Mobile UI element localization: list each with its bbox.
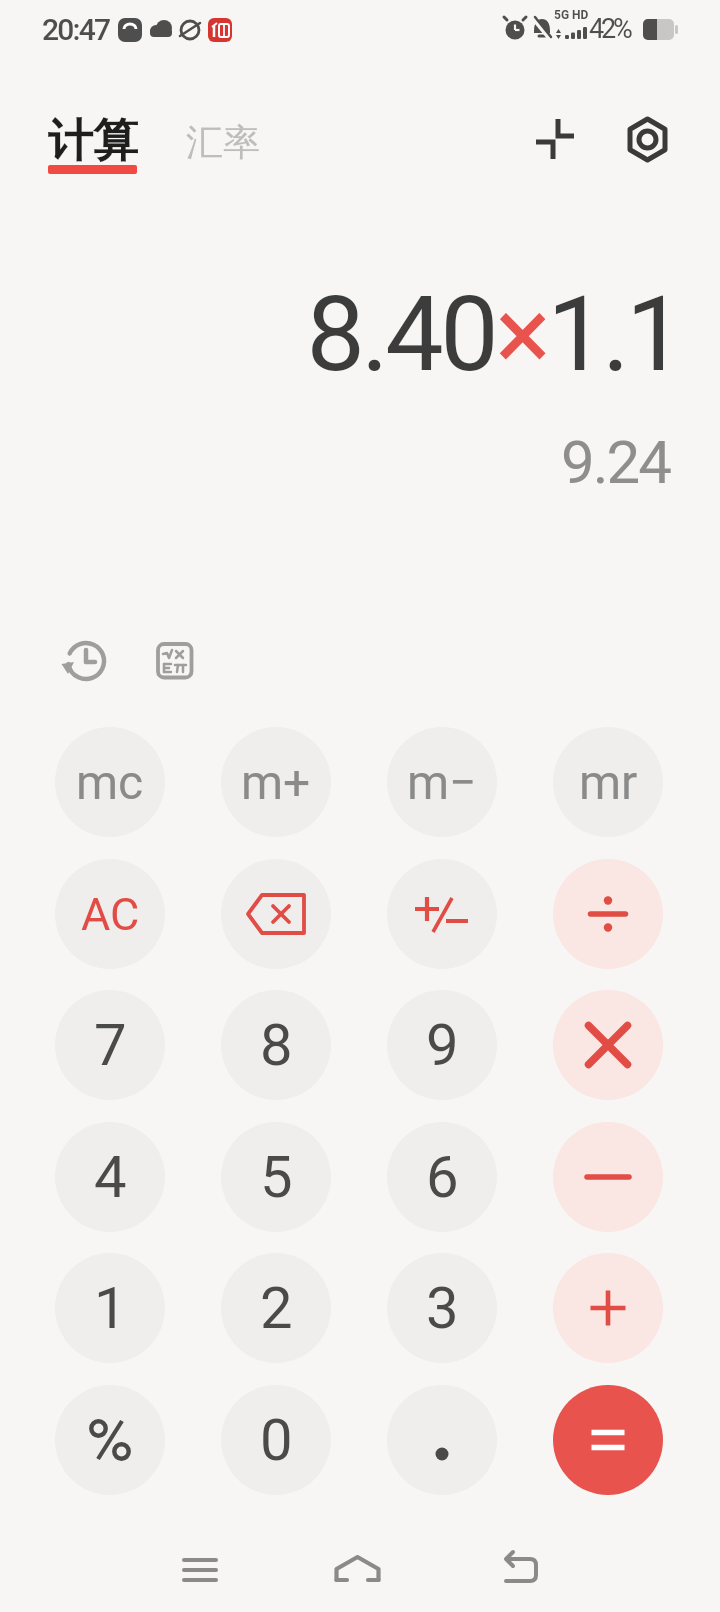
staticText: 42% <box>589 13 630 45</box>
staticText: HD <box>572 8 589 22</box>
staticText: 0 <box>260 1406 293 1474</box>
staticText: m− <box>407 754 477 810</box>
button[interactable] <box>553 1122 663 1232</box>
button[interactable] <box>387 1385 497 1495</box>
button[interactable]: 3 <box>387 1253 497 1363</box>
button[interactable] <box>387 859 497 969</box>
staticText: mr <box>579 754 638 810</box>
staticText: 8 <box>260 1011 293 1079</box>
staticText: 9 <box>426 1011 459 1079</box>
staticText: 1 <box>94 1274 127 1342</box>
button[interactable]: 7 <box>55 990 165 1100</box>
button[interactable]: 2 <box>221 1253 331 1363</box>
button[interactable]: mr <box>553 727 663 837</box>
button[interactable]: mc <box>55 727 165 837</box>
button[interactable] <box>553 859 663 969</box>
button[interactable] <box>334 1546 382 1594</box>
staticText: 4 <box>94 1143 127 1211</box>
staticText: 2 <box>260 1274 293 1342</box>
staticText: 3 <box>426 1274 459 1342</box>
button[interactable]: 1 <box>55 1253 165 1363</box>
staticText: 9.24 <box>0 427 670 497</box>
staticText: 5G <box>554 8 570 22</box>
button[interactable] <box>498 1546 542 1590</box>
button[interactable] <box>62 637 110 685</box>
button[interactable]: 0 <box>221 1385 331 1495</box>
button[interactable] <box>528 112 582 166</box>
staticText: mc <box>76 754 144 810</box>
staticText: 汇率 <box>186 119 260 166</box>
staticText: m+ <box>241 754 311 810</box>
staticText: 6 <box>426 1143 459 1211</box>
button[interactable]: 计算 <box>44 108 134 165</box>
button[interactable] <box>553 1253 663 1363</box>
button[interactable]: 5 <box>221 1122 331 1232</box>
button[interactable]: 9 <box>387 990 497 1100</box>
button[interactable]: AC <box>55 859 165 969</box>
staticText: 8.40×1.1 <box>0 274 681 404</box>
button[interactable]: 4 <box>55 1122 165 1232</box>
button[interactable] <box>155 641 195 681</box>
button[interactable]: 6 <box>387 1122 497 1232</box>
staticText: 计算 <box>48 113 138 170</box>
staticText: 5 <box>260 1143 293 1211</box>
button[interactable]: m+ <box>221 727 331 837</box>
button[interactable] <box>553 990 663 1100</box>
button[interactable]: 8 <box>221 990 331 1100</box>
button[interactable]: 汇率 <box>182 119 256 166</box>
staticText: AC <box>81 888 140 941</box>
button[interactable] <box>178 1548 222 1592</box>
button[interactable] <box>55 1385 165 1495</box>
button[interactable] <box>221 859 331 969</box>
button[interactable] <box>553 1385 663 1495</box>
staticText: 7 <box>94 1011 127 1079</box>
button[interactable] <box>620 112 674 166</box>
staticText: 20:47 <box>42 12 110 47</box>
button[interactable]: m− <box>387 727 497 837</box>
